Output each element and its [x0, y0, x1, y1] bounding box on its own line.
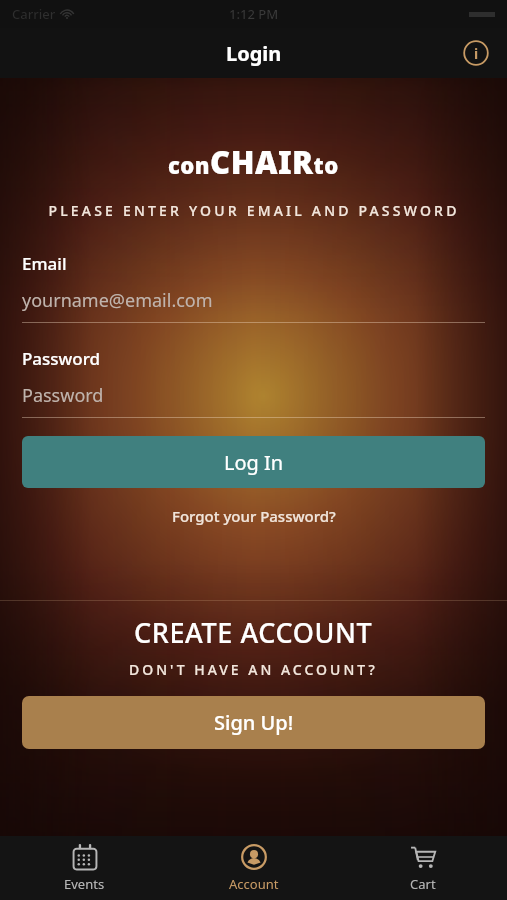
button[interactable]: Forgot your Password? — [164, 502, 344, 530]
staticText: yourname@email.com — [22, 288, 213, 313]
staticText: Password — [22, 383, 104, 408]
staticText: Forgot your Password? — [172, 506, 336, 526]
button[interactable]: Cart — [338, 836, 507, 900]
staticText: DON'T HAVE AN ACCOUNT? — [129, 660, 378, 679]
button[interactable]: Account — [169, 836, 338, 900]
staticText: conCHAIRto — [168, 141, 339, 183]
staticText: PLEASE ENTER YOUR EMAIL AND PASSWORD — [48, 201, 460, 220]
staticText: i — [474, 44, 479, 63]
staticText: Login — [226, 40, 282, 67]
button[interactable]: Log In — [22, 436, 485, 488]
staticText: Events — [64, 875, 105, 893]
button[interactable]: Sign Up! — [22, 696, 485, 749]
staticText: Password — [22, 347, 101, 370]
staticText: Email — [22, 252, 67, 275]
staticText: CREATE ACCOUNT — [134, 614, 373, 651]
staticText: Cart — [410, 875, 436, 893]
button[interactable]: Events — [0, 836, 169, 900]
staticText: 1:12 PM — [229, 5, 279, 23]
button[interactable]: Password — [22, 347, 485, 418]
staticText: Account — [229, 875, 279, 893]
staticText: Log In — [224, 449, 284, 476]
button[interactable]: Information — [459, 36, 493, 70]
staticText: Sign Up! — [214, 709, 294, 736]
button[interactable]: Email — [22, 252, 485, 323]
staticText: Carrier — [12, 5, 56, 23]
